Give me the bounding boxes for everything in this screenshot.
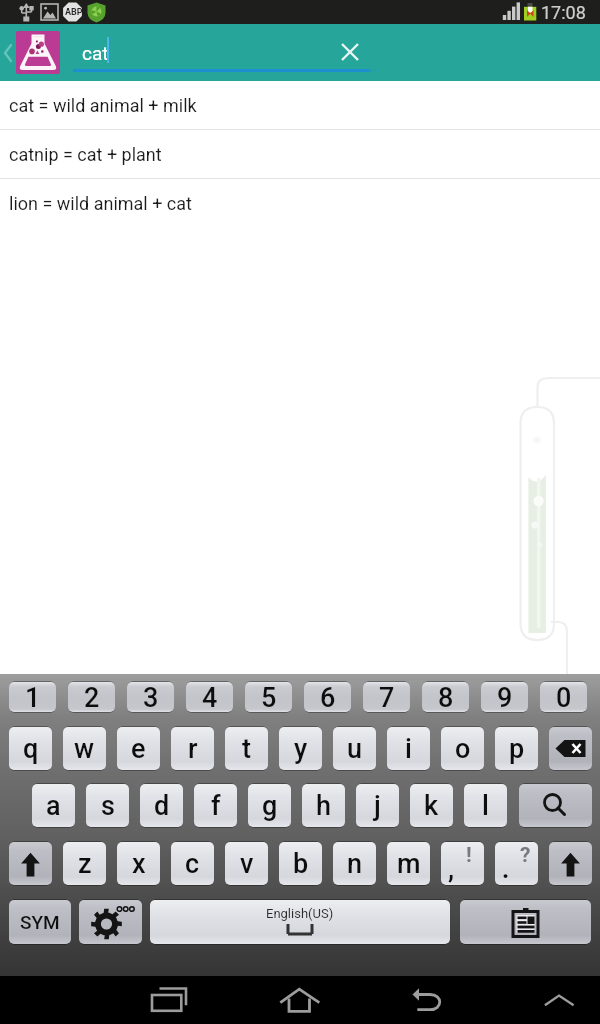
staticText: i (405, 733, 412, 765)
staticText: ABP (65, 7, 83, 18)
staticText: 1 (25, 682, 41, 712)
staticText: 2 (84, 682, 100, 712)
staticText: , (448, 855, 455, 884)
staticText: o (455, 733, 471, 765)
button[interactable]: w (63, 727, 106, 770)
staticText: g (262, 790, 278, 822)
button[interactable]: y (279, 727, 322, 770)
staticText: English(US) (266, 906, 334, 921)
button[interactable]: h (302, 784, 345, 827)
staticText: e (131, 733, 146, 765)
staticText: v (240, 848, 254, 880)
button[interactable]: Space (150, 900, 450, 944)
staticText: l (482, 790, 489, 822)
staticText: 9 (497, 682, 513, 712)
staticText: 3 (143, 682, 159, 712)
button[interactable]: e (117, 727, 160, 770)
button[interactable]: u (333, 727, 376, 770)
staticText: cat = wild animal + milk (9, 95, 197, 116)
button[interactable]: Clipboard (460, 900, 591, 944)
button[interactable]: 5 (245, 682, 292, 712)
button[interactable]: Back (0, 38, 16, 68)
staticText: b (293, 848, 309, 880)
button[interactable]: Shift (9, 842, 52, 885)
button[interactable]: Home (259, 976, 339, 1024)
staticText: ! (466, 843, 472, 868)
button[interactable]: m (387, 842, 430, 885)
staticText: d (154, 790, 170, 822)
staticText: cat (82, 42, 109, 64)
button[interactable]: Recents (129, 976, 209, 1024)
staticText: 8 (438, 682, 454, 712)
button[interactable]: 9 (481, 682, 528, 712)
button[interactable]: Back (389, 976, 469, 1024)
button[interactable]: 4 (186, 682, 233, 712)
staticText: 7 (379, 682, 395, 712)
button[interactable]: Search (519, 784, 592, 827)
staticText: f (211, 790, 221, 822)
staticText: j (374, 790, 381, 822)
button[interactable]: catnip = cat + plant (0, 130, 600, 179)
button[interactable]: b (279, 842, 322, 885)
button[interactable]: lion = wild animal + cat (0, 179, 600, 227)
button[interactable]: Settings (79, 900, 142, 944)
button[interactable]: Delete (549, 727, 592, 770)
staticText: u (347, 733, 363, 765)
staticText: h (316, 790, 332, 822)
staticText: q (23, 733, 39, 765)
button[interactable]: g (248, 784, 291, 827)
staticText: c (185, 848, 200, 880)
staticText: ? (520, 843, 531, 868)
button[interactable]: 1 (9, 682, 56, 712)
staticText: a (46, 790, 61, 822)
button[interactable]: k (410, 784, 453, 827)
button[interactable]: v (225, 842, 268, 885)
staticText: w (74, 733, 95, 765)
button[interactable]: 8 (422, 682, 469, 712)
staticText: p (509, 733, 525, 765)
button[interactable]: j (356, 784, 399, 827)
staticText: x (132, 848, 146, 880)
button[interactable]: Hide keyboard (519, 976, 599, 1024)
button[interactable]: l (464, 784, 507, 827)
button[interactable]: o (441, 727, 484, 770)
button[interactable]: r (171, 727, 214, 770)
button[interactable]: f (194, 784, 237, 827)
staticText: 0 (556, 682, 572, 712)
staticText: y (294, 733, 308, 765)
staticText: z (78, 848, 92, 880)
button[interactable]: SYM (9, 900, 71, 944)
staticText: lion = wild animal + cat (9, 193, 192, 214)
button[interactable]: 3 (127, 682, 174, 712)
button[interactable]: n (333, 842, 376, 885)
button[interactable]: z (63, 842, 106, 885)
button[interactable]: 2 (68, 682, 115, 712)
button[interactable]: s (86, 784, 129, 827)
button[interactable]: Alchemy app icon (16, 31, 60, 74)
staticText: 17:08 (541, 2, 586, 23)
button[interactable]: q (9, 727, 52, 770)
staticText: . (502, 855, 510, 884)
button[interactable]: t (225, 727, 268, 770)
button[interactable]: Comma (441, 842, 484, 885)
button[interactable]: Shift (549, 842, 592, 885)
button[interactable]: i (387, 727, 430, 770)
button[interactable]: 0 (540, 682, 587, 712)
staticText: s (101, 790, 115, 822)
staticText: n (347, 848, 363, 880)
button[interactable]: 6 (304, 682, 351, 712)
button[interactable]: p (495, 727, 538, 770)
button[interactable]: c (171, 842, 214, 885)
button[interactable]: d (140, 784, 183, 827)
button[interactable]: Clear text (329, 30, 373, 74)
button[interactable]: a (32, 784, 75, 827)
button[interactable]: Period (495, 842, 538, 885)
staticText: r (188, 733, 198, 765)
staticText: 5 (261, 682, 277, 712)
button[interactable]: x (117, 842, 160, 885)
button[interactable]: cat = wild animal + milk (0, 82, 600, 130)
staticText: SYM (20, 911, 60, 933)
staticText: m (397, 848, 421, 880)
staticText: 6 (320, 682, 336, 712)
button[interactable]: 7 (363, 682, 410, 712)
